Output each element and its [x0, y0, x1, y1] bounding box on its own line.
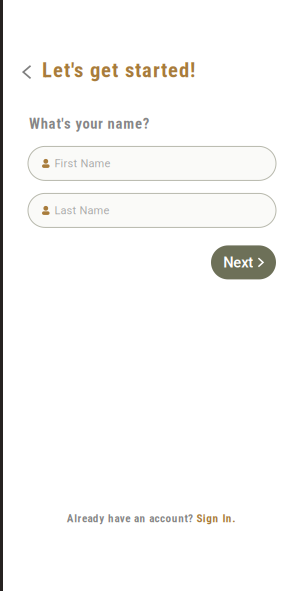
button[interactable]: Back — [17, 58, 37, 82]
staticText: First Name — [55, 157, 111, 170]
staticText: What's your name? — [29, 115, 150, 132]
staticText: Last Name — [55, 204, 110, 217]
staticText: Next — [223, 254, 253, 271]
staticText: Sign In. — [196, 512, 235, 525]
staticText: Let's get started! — [42, 58, 195, 82]
button[interactable]: Already have an account? — [67, 512, 235, 525]
staticText: Already have an account? — [67, 512, 196, 525]
button[interactable]: Next — [211, 245, 276, 279]
button[interactable]: Last Name — [28, 193, 276, 227]
button[interactable]: First Name — [28, 146, 276, 180]
